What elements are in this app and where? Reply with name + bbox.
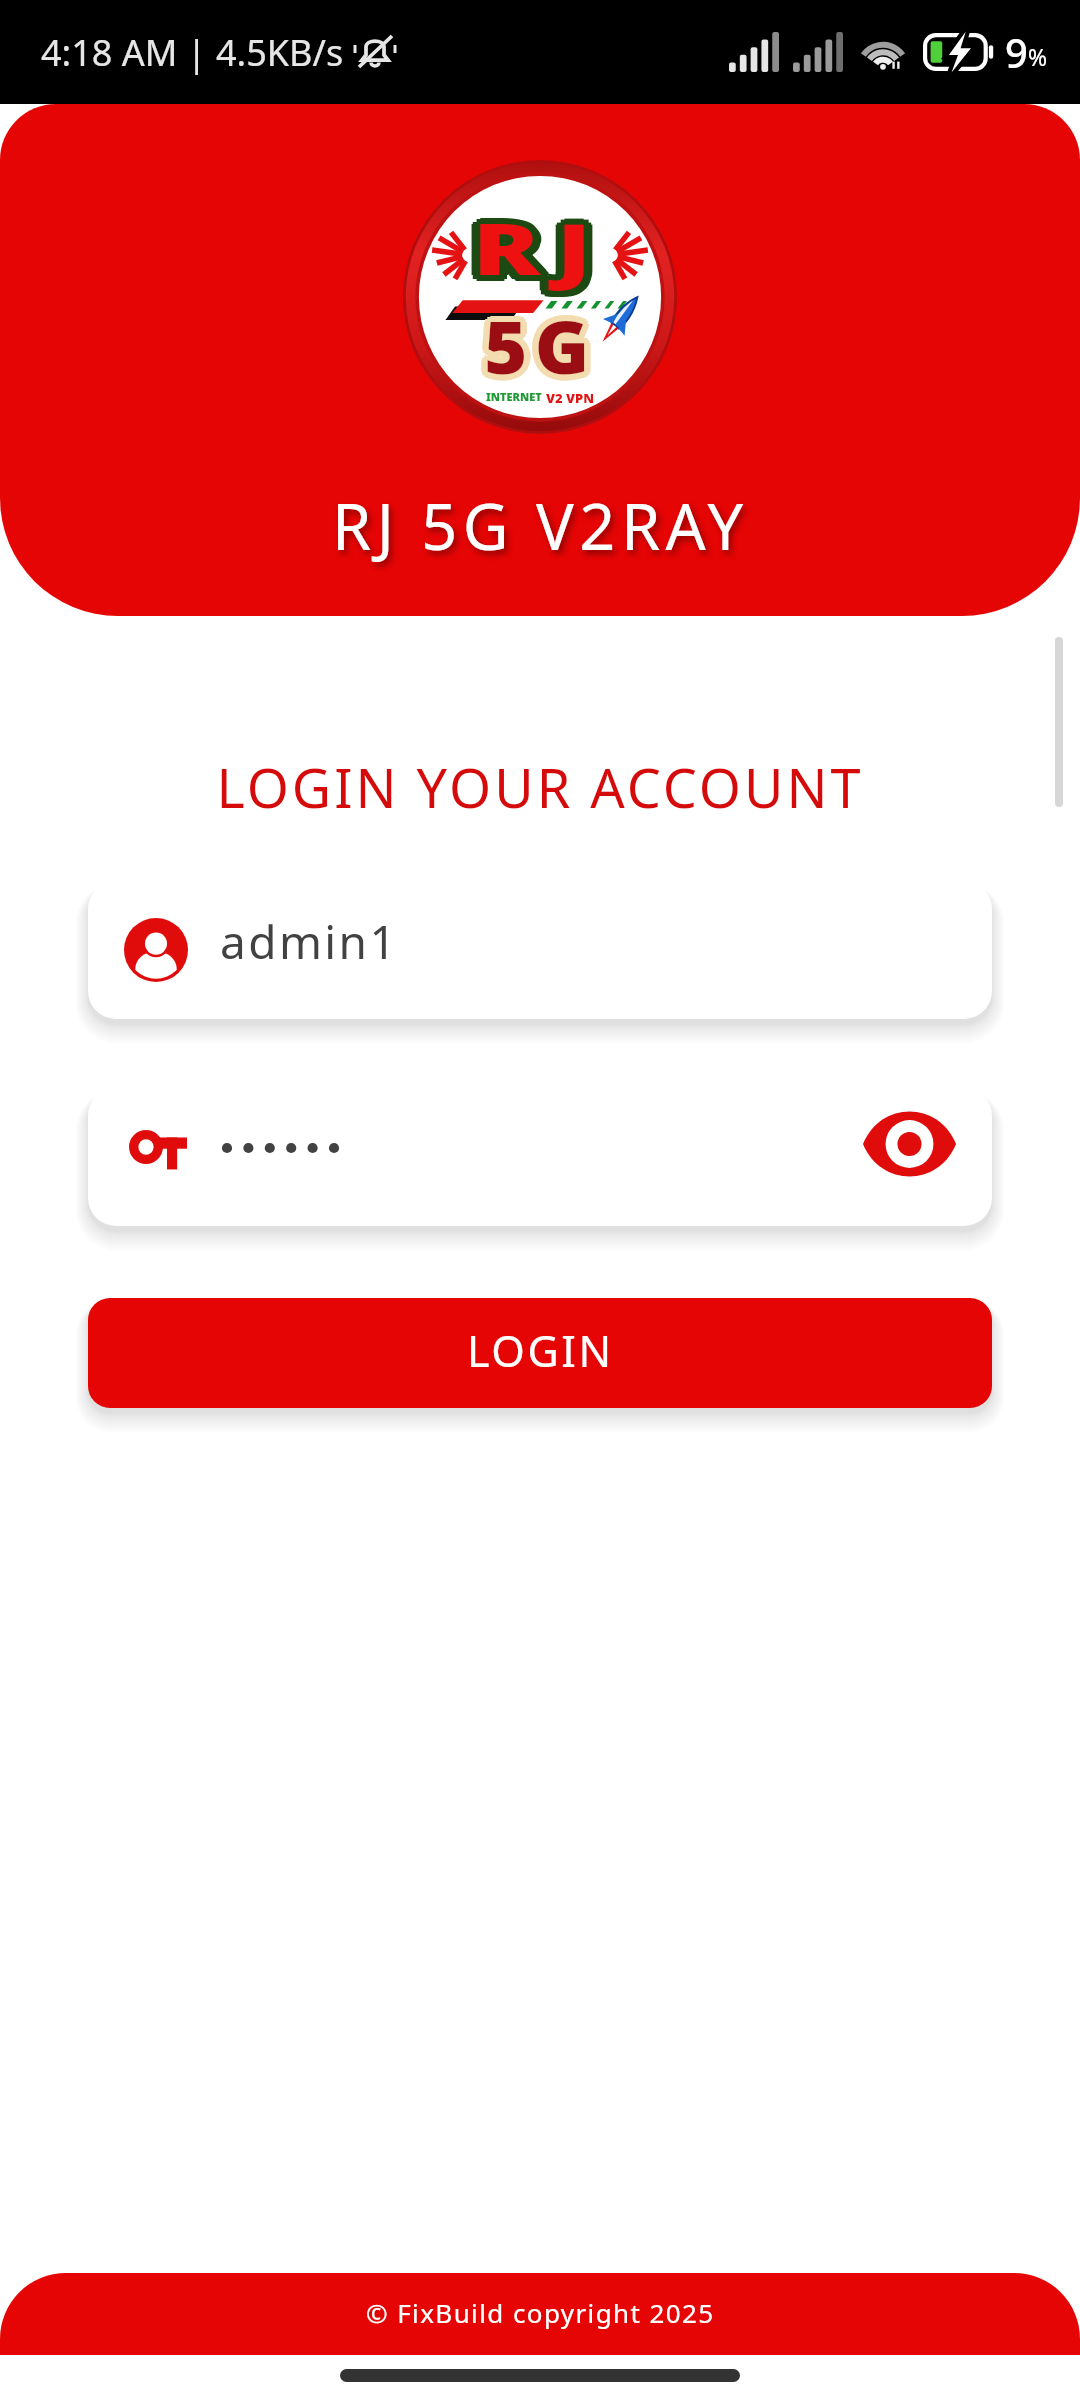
staticText: 5G (479, 300, 591, 398)
button[interactable]: LOGIN (88, 1298, 992, 1408)
staticText: RJ (472, 193, 609, 289)
staticText: RJ (472, 199, 609, 295)
staticText: RJ (480, 203, 616, 299)
staticText: 5G (478, 297, 590, 394)
staticText: 5G (481, 291, 594, 389)
staticText: RJ (465, 197, 601, 293)
staticText: RJ 5G V2RAY (332, 483, 749, 569)
staticText: RJ (469, 205, 605, 301)
staticText: 5G (490, 300, 602, 398)
staticText: RJ (477, 205, 614, 301)
staticText: admin1 (220, 910, 399, 973)
staticText: 5G (484, 303, 597, 401)
button[interactable]: Show password (849, 1088, 992, 1226)
staticText: 5G (487, 302, 600, 400)
staticText: RJ (472, 206, 609, 302)
staticText: RJ (481, 199, 617, 295)
staticText: 9 (1005, 25, 1028, 79)
staticText: 5G (479, 293, 591, 391)
staticText: © FixBuild copyright 2025 (366, 2295, 715, 2330)
staticText: 5G (484, 297, 597, 394)
staticText: 5G (491, 297, 603, 394)
staticText: RJ (477, 194, 614, 290)
staticText: RJ (480, 197, 616, 293)
staticText: 5G (490, 293, 602, 391)
staticText: 5G (487, 291, 600, 389)
staticText: RJ (464, 199, 600, 295)
staticText: % (1028, 41, 1048, 72)
staticText: V2 VPN (546, 389, 595, 407)
staticText: RJ (465, 203, 601, 299)
staticText: 5G (484, 290, 597, 388)
staticText: INTERNET (486, 389, 542, 404)
staticText: 4:18 AM | 4.5KB/s (41, 28, 344, 77)
button[interactable]: Show password (88, 1088, 992, 1226)
staticText: RJ (469, 194, 605, 290)
other: Silent mode (350, 27, 400, 77)
staticText: 5G (481, 302, 594, 400)
staticText: LOGIN YOUR ACCOUNT (0, 750, 1080, 824)
staticText: LOGIN (467, 1321, 614, 1380)
button[interactable]: admin1 (88, 881, 992, 1019)
